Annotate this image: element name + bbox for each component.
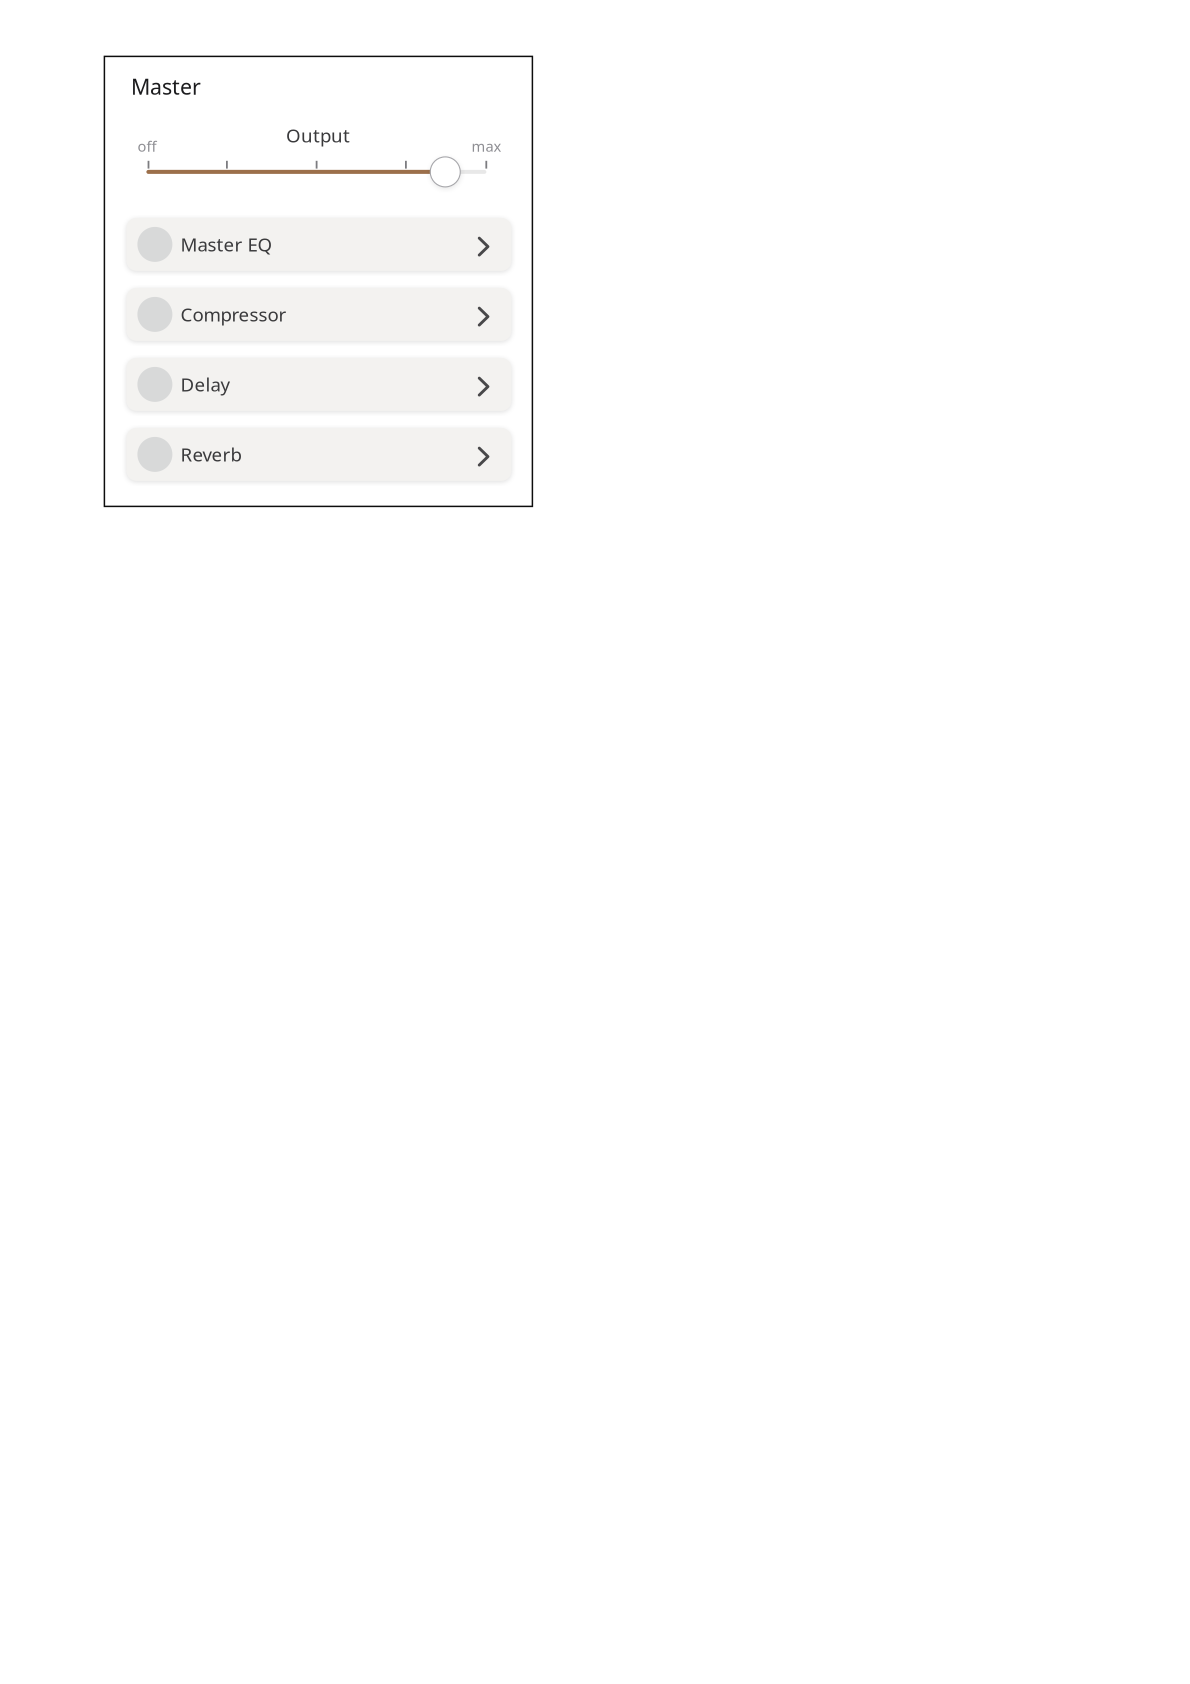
button[interactable]: Master EQ — [126, 218, 511, 271]
button[interactable]: Output level — [104, 157, 532, 187]
staticText: Master EQ — [180, 232, 272, 257]
staticText: Reverb — [180, 442, 241, 467]
staticText: off — [137, 136, 156, 156]
button[interactable]: Compressor — [126, 288, 511, 341]
staticText: Delay — [180, 372, 230, 397]
button[interactable]: Delay — [126, 358, 511, 411]
staticText: Master — [131, 72, 201, 101]
button[interactable]: Reverb — [126, 428, 511, 481]
staticText: Output — [286, 123, 350, 148]
staticText: Compressor — [180, 302, 286, 327]
staticText: max — [471, 136, 501, 156]
